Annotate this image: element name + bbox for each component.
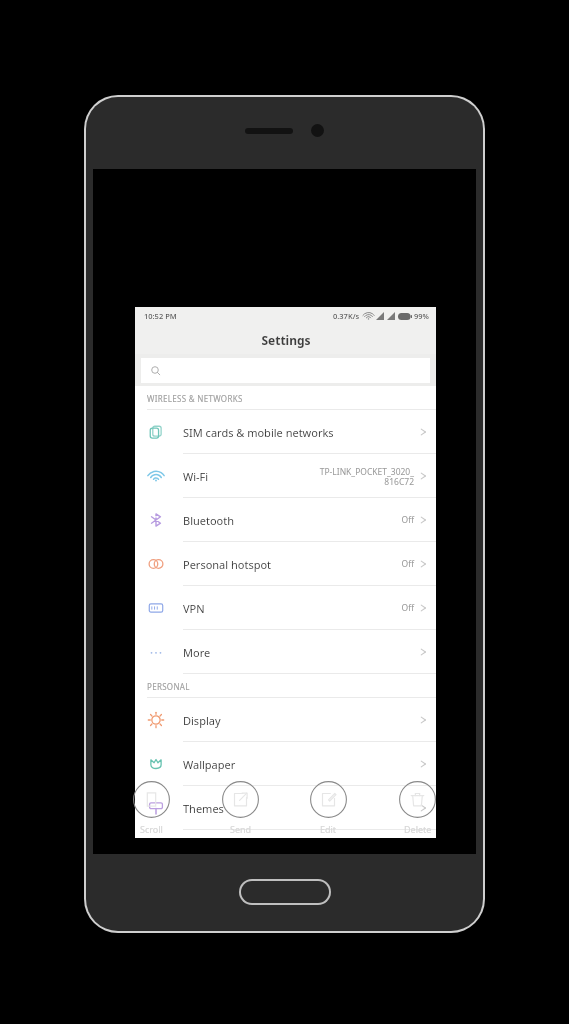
button[interactable]: Search settings: [141, 358, 430, 383]
button[interactable]: Delete: [395, 777, 440, 839]
staticText: Scroll: [140, 823, 163, 835]
staticText: 99%: [414, 311, 429, 321]
staticText: Delete: [404, 823, 432, 835]
staticText: Wallpaper: [183, 757, 236, 772]
button[interactable]: Send: [218, 777, 263, 839]
staticText: 10:52 PM: [144, 311, 177, 321]
button[interactable]: Themes: [135, 786, 436, 830]
staticText: Send: [230, 823, 252, 835]
button[interactable]: Home: [239, 879, 331, 905]
staticText: 0.37K/s: [333, 311, 360, 321]
button[interactable]: More: [135, 630, 436, 674]
staticText: Display: [183, 713, 221, 728]
staticText: Settings: [261, 332, 311, 348]
button[interactable]: VPN: [135, 586, 436, 630]
staticText: Personal hotspot: [183, 557, 272, 572]
staticText: TP-LINK_POCKET_3020_ 816C72: [319, 466, 414, 487]
staticText: VPN: [183, 601, 205, 616]
button[interactable]: SIM cards & mobile networks: [135, 410, 436, 454]
button[interactable]: Personal hotspot: [135, 542, 436, 586]
button[interactable]: Wi-Fi: [135, 454, 436, 498]
staticText: PERSONAL: [147, 681, 190, 692]
staticText: Off: [401, 602, 414, 614]
staticText: SIM cards & mobile networks: [183, 425, 334, 440]
button[interactable]: Edit: [306, 777, 351, 839]
button[interactable]: Wallpaper: [135, 742, 436, 786]
staticText: Bluetooth: [183, 513, 235, 528]
button[interactable]: Scroll: [129, 777, 174, 839]
staticText: Off: [401, 514, 414, 526]
staticText: Wi-Fi: [183, 469, 209, 484]
staticText: Themes: [183, 801, 224, 816]
button[interactable]: Bluetooth: [135, 498, 436, 542]
staticText: Off: [401, 558, 414, 570]
button[interactable]: Display: [135, 698, 436, 742]
staticText: WIRELESS & NETWORKS: [147, 393, 243, 404]
staticText: More: [183, 645, 211, 660]
staticText: Edit: [320, 823, 337, 835]
